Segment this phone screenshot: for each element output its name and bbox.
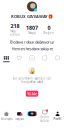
staticText: Son yorumlarını yaptığın için: [12, 77, 51, 80]
staticText: fotoğrafları sakla?: [21, 80, 43, 84]
button[interactable]: Tab 0: [0, 55, 13, 62]
staticText: Ana sayfa: [1, 117, 12, 121]
staticText: Profil: [54, 117, 62, 121]
staticText: Gelen kutusu: [40, 115, 49, 122]
button[interactable]: 218: [8, 22, 22, 37]
button[interactable]: Gelen kutusu: [38, 110, 51, 122]
button[interactable]: Tab 2: [26, 55, 38, 62]
button[interactable]: Yükle: [26, 91, 38, 97]
staticText: +: [30, 110, 33, 117]
button[interactable]: Profil: [51, 111, 64, 121]
button[interactable]: Ana sayfa: [0, 111, 13, 121]
staticText: Beğeni: [43, 31, 54, 35]
staticText: 1807: [26, 24, 38, 31]
button[interactable]: Tab 3: [38, 55, 51, 62]
staticText: Yükle: [27, 91, 37, 96]
button[interactable]: Tab 1: [13, 55, 26, 62]
button[interactable]: 1807: [25, 24, 39, 35]
staticText: Takip edilen: [10, 29, 20, 37]
staticText: 218: [10, 22, 19, 29]
staticText: Mağaza: [15, 117, 23, 121]
button[interactable]: +: [26, 111, 38, 121]
staticText: Takipçi: [28, 31, 36, 35]
button[interactable]: Tab 4: [51, 55, 64, 62]
button[interactable]: Mağaza: [13, 111, 26, 121]
staticText: 0: [47, 24, 50, 31]
staticText: Bedava robux dağıtıyoruz: [10, 39, 54, 44]
staticText: ROBUX GIVEAWAY 🎁: [11, 14, 53, 19]
staticText: 🔒: [28, 68, 35, 74]
button[interactable]: 0: [42, 24, 56, 35]
staticText: Hemen hesabını takip et: [11, 46, 52, 51]
